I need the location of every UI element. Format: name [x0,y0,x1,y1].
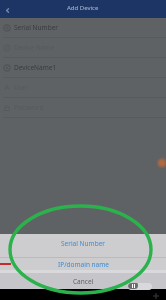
button[interactable]: Back [3,6,12,15]
button[interactable]: Serial Number [0,18,166,38]
staticText: Add Device [67,4,99,12]
staticText: Cancel [73,277,94,286]
button[interactable]: IP/domain name [0,258,166,270]
button[interactable]: Pause [128,283,152,290]
staticText: DeviceName1 [14,63,57,72]
button[interactable]: Serial Number [0,234,166,253]
button[interactable]: Add device [156,157,166,169]
staticText: Serial Number [61,239,105,248]
staticText: Serial Number [14,23,58,32]
button[interactable]: DeviceName1 [0,58,166,78]
staticText: IP/domain name [58,260,109,269]
button[interactable]: Cancel [0,273,166,289]
